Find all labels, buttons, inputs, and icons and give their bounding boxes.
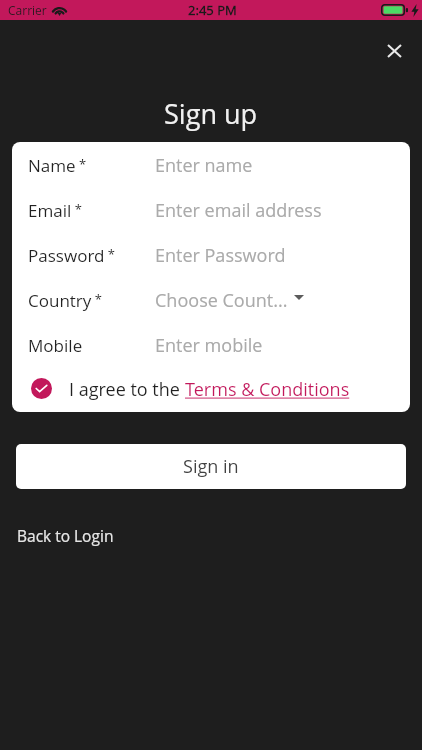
staticText: Name * [28,154,155,177]
button[interactable]: Mobile [12,322,410,367]
staticText: Enter mobile [155,333,263,358]
button[interactable]: Password * [12,232,410,277]
button[interactable]: Close [374,31,414,71]
staticText: Carrier [8,2,47,18]
staticText: Enter Password [155,243,286,268]
staticText: Enter name [155,153,253,178]
button[interactable]: Country * [12,277,410,322]
button[interactable]: Back to Login [17,525,114,546]
staticText: Country * [28,289,155,312]
staticText: 2:45 PM [188,1,237,19]
button[interactable]: Email * [12,187,410,232]
button[interactable]: Sign in [16,444,406,489]
button[interactable]: I agree to the [12,367,410,412]
staticText: Choose Count... [155,288,288,313]
staticText: I agree to the [69,377,185,402]
staticText: Password * [28,244,155,267]
button[interactable]: Name * [12,142,410,187]
staticText: Mobile [28,334,155,357]
staticText: Sign up [164,95,258,132]
staticText: Enter email address [155,198,322,223]
staticText: Terms & Conditions [185,377,350,402]
staticText: Email * [28,199,155,222]
staticText: Back to Login [17,525,114,546]
staticText: Sign in [183,454,239,479]
